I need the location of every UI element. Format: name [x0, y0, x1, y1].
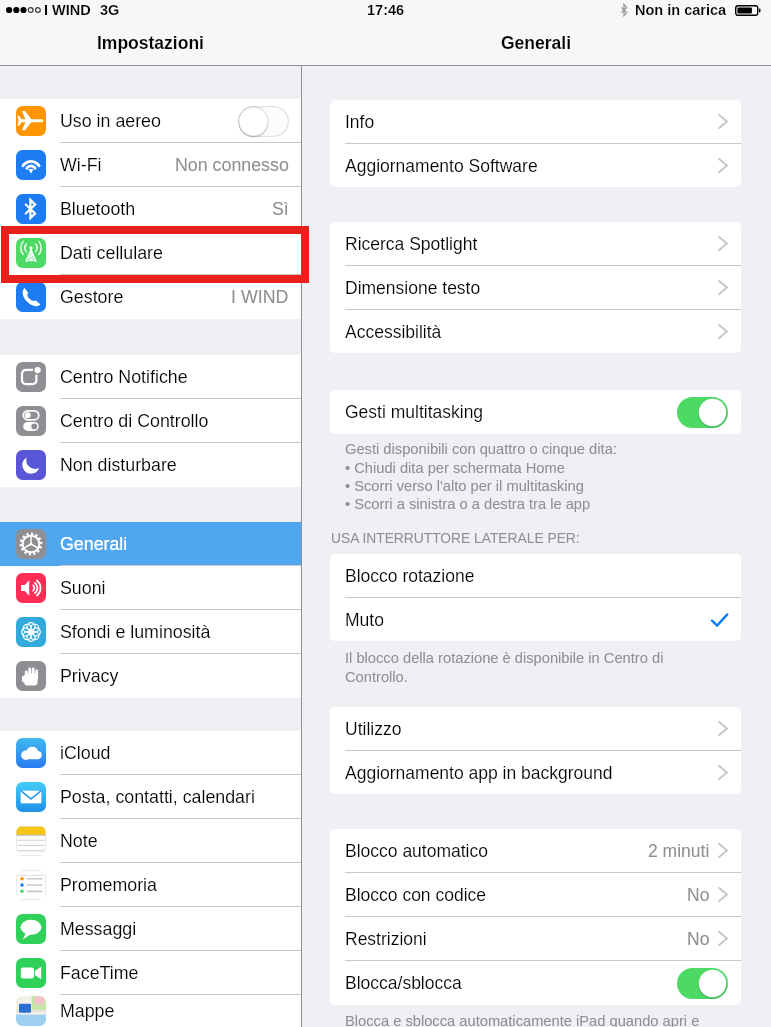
button[interactable]: Privacy [0, 654, 301, 698]
staticText: Gestore [60, 287, 124, 307]
button[interactable]: Accessibilità [330, 310, 741, 353]
staticText: Messaggi [60, 919, 137, 939]
staticText: Sfondi e luminosità [60, 622, 211, 642]
staticText: Dati cellulare [60, 243, 163, 263]
staticText: No [687, 885, 710, 905]
staticText: I WIND [231, 287, 289, 307]
staticText: Ricerca Spotlight [345, 234, 478, 254]
button[interactable]: Non disturbare [0, 443, 301, 487]
staticText: Accessibilità [345, 322, 442, 342]
staticText: Info [345, 112, 375, 132]
button[interactable]: Aggiornamento Software [330, 144, 741, 187]
button[interactable]: Dimensione testo [330, 266, 741, 309]
button[interactable]: Dati cellulare [0, 231, 301, 275]
staticText: Blocca/sblocca [345, 973, 462, 993]
button[interactable]: Wi-Fi [0, 143, 301, 187]
staticText: Blocco rotazione [345, 566, 475, 586]
button[interactable]: iCloud [0, 731, 301, 775]
button[interactable]: Uso in aereo [0, 99, 301, 143]
button[interactable]: Posta, contatti, calendari [0, 775, 301, 819]
staticText: Gesti disponibili con quattro o cinque d… [345, 441, 617, 512]
staticText: Bluetooth [60, 199, 136, 219]
button[interactable]: Blocca/sblocca [330, 961, 741, 1005]
button[interactable]: Blocco con codice [330, 873, 741, 916]
staticText: Dimensione testo [345, 278, 481, 298]
staticText: Il blocco della rotazione è disponibile … [345, 650, 664, 685]
button[interactable]: Restrizioni [330, 917, 741, 960]
staticText: iCloud [60, 743, 111, 763]
button[interactable]: Bluetooth [0, 187, 301, 231]
button[interactable]: Mappe [0, 995, 301, 1027]
staticText: Generali [60, 534, 128, 554]
staticText: Sì [272, 199, 289, 219]
staticText: No [687, 929, 710, 949]
button[interactable]: Gestore [0, 275, 301, 319]
button[interactable]: Toggle off [238, 106, 289, 137]
staticText: Aggiornamento app in background [345, 763, 613, 783]
staticText: Privacy [60, 666, 119, 686]
button[interactable]: Blocco automatico [330, 829, 741, 872]
staticText: Blocco automatico [345, 841, 488, 861]
button[interactable]: Ricerca Spotlight [330, 222, 741, 265]
staticText: 17:46 [367, 2, 405, 18]
button[interactable]: Muto [330, 598, 741, 641]
staticText: Blocca e sblocca automaticamente iPad qu… [345, 1013, 700, 1027]
staticText: Non in carica [635, 2, 727, 18]
button[interactable]: Toggle on [677, 968, 728, 999]
button[interactable]: Promemoria [0, 863, 301, 907]
staticText: Suoni [60, 578, 106, 598]
staticText: Note [60, 831, 98, 851]
button[interactable]: Aggiornamento app in background [330, 751, 741, 794]
button[interactable]: Sfondi e luminosità [0, 610, 301, 654]
staticText: Mappe [60, 1001, 115, 1021]
button[interactable]: Centro Notifiche [0, 355, 301, 399]
staticText: Posta, contatti, calendari [60, 787, 255, 807]
button[interactable]: Note [0, 819, 301, 863]
button[interactable]: Gesti multitasking [330, 390, 741, 434]
staticText: Aggiornamento Software [345, 156, 538, 176]
staticText: Centro di Controllo [60, 411, 209, 431]
staticText: FaceTime [60, 963, 139, 983]
button[interactable]: FaceTime [0, 951, 301, 995]
staticText: Uso in aereo [60, 111, 161, 131]
button[interactable]: Suoni [0, 566, 301, 610]
staticText: Gesti multitasking [345, 402, 484, 422]
staticText: USA INTERRUTTORE LATERALE PER: [331, 531, 580, 546]
staticText: Centro Notifiche [60, 367, 188, 387]
staticText: Restrizioni [345, 929, 427, 949]
staticText: Non disturbare [60, 455, 177, 475]
button[interactable]: Blocco rotazione [330, 554, 741, 597]
staticText: Generali [501, 33, 572, 53]
staticText: Wi-Fi [60, 155, 102, 175]
staticText: 3G [100, 2, 120, 18]
staticText: Blocco con codice [345, 885, 487, 905]
staticText: Impostazioni [97, 33, 204, 53]
button[interactable]: Toggle on [677, 397, 728, 428]
staticText: I WIND [44, 2, 91, 18]
staticText: Muto [345, 610, 384, 630]
button[interactable]: Messaggi [0, 907, 301, 951]
staticText: Utilizzo [345, 719, 402, 739]
button[interactable]: Generali [0, 522, 301, 566]
button[interactable]: Centro di Controllo [0, 399, 301, 443]
button[interactable]: Info [330, 100, 741, 143]
button[interactable]: Utilizzo [330, 707, 741, 750]
staticText: Promemoria [60, 875, 157, 895]
staticText: 2 minuti [648, 841, 710, 861]
staticText: Non connesso [175, 155, 289, 175]
